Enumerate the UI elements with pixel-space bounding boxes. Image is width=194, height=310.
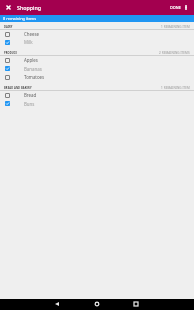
staticText: 8 remaining items	[3, 16, 37, 21]
staticText: 1 REMAINING ITEM	[161, 25, 190, 29]
staticText: Bananas	[24, 66, 42, 72]
staticText: Milk	[24, 39, 33, 45]
staticText: DONE	[170, 5, 181, 10]
staticText: Apples	[24, 57, 38, 63]
button[interactable]: Bread	[0, 91, 194, 99]
staticText: Cheese	[24, 31, 40, 37]
button[interactable]: Close	[4, 3, 13, 12]
button[interactable]: Home	[90, 298, 104, 309]
button[interactable]: Bananas	[0, 64, 194, 73]
button[interactable]: Milk	[0, 38, 194, 46]
button[interactable]: Cheese	[0, 30, 194, 38]
button[interactable]: Apples	[0, 56, 194, 64]
staticText: 2 REMAINING ITEMS	[159, 51, 190, 55]
staticText: Bread	[24, 92, 37, 98]
button[interactable]: DONE	[168, 2, 183, 13]
button[interactable]: Recents	[129, 298, 143, 309]
button[interactable]: Back	[50, 298, 64, 309]
button[interactable]: Buns	[0, 99, 194, 108]
button[interactable]: Tomatoes	[0, 73, 194, 81]
staticText: Buns	[24, 101, 35, 107]
staticText: Shopping	[17, 4, 42, 11]
staticText: DAIRY	[4, 25, 13, 29]
button[interactable]: More options	[181, 3, 190, 12]
staticText: PRODUCE	[4, 51, 18, 55]
staticText: 1 REMAINING ITEM	[161, 86, 190, 90]
staticText: BREAD AND BAKERY	[4, 86, 32, 90]
staticText: Tomatoes	[24, 74, 45, 80]
